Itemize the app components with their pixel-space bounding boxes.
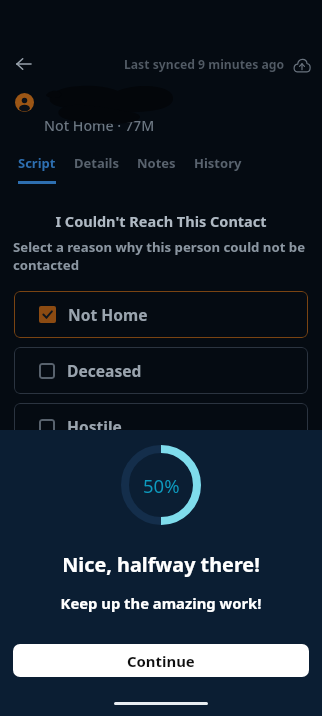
button[interactable]: Notes [128,154,185,184]
button[interactable]: Not Home [14,291,308,338]
button[interactable]: Script [9,154,65,184]
button[interactable]: Continue [13,644,309,677]
staticText: Script [18,154,56,172]
staticText: Continue [127,651,195,671]
button[interactable]: Sync now [289,52,314,77]
staticText: Hostile [67,416,122,437]
button[interactable]: Hostile [14,403,308,450]
button[interactable]: Deceased [14,347,308,394]
staticText: Notes [137,154,176,172]
staticText: Deceased [67,360,142,381]
button[interactable]: Back [10,50,38,78]
staticText: Keep up the amazing work! [0,593,322,613]
staticText: Last synced 9 minutes ago [124,56,285,73]
staticText: Not Home · 77M [44,116,155,135]
staticText: 50% [143,473,180,498]
button[interactable]: History [185,154,251,184]
staticText: Select a reason why this person could no… [13,238,317,274]
staticText: I Couldn't Reach This Contact [0,211,322,231]
staticText: Nice, halfway there! [0,551,322,578]
staticText: Not Home [68,304,148,325]
button[interactable]: Details [65,154,128,184]
staticText: History [194,154,242,172]
staticText: Details [74,154,119,172]
